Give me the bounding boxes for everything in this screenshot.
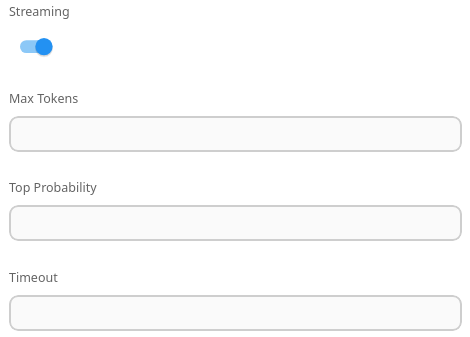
staticText: Streaming — [9, 3, 70, 20]
button[interactable]: Streaming toggle, on — [20, 34, 53, 55]
staticText: Timeout — [9, 269, 58, 286]
button[interactable]: Top Probability input — [9, 205, 462, 241]
staticText: Max Tokens — [9, 90, 79, 107]
staticText: Top Probability — [9, 179, 97, 196]
button[interactable]: Max Tokens input — [9, 116, 462, 152]
button[interactable]: Timeout input — [9, 295, 462, 331]
